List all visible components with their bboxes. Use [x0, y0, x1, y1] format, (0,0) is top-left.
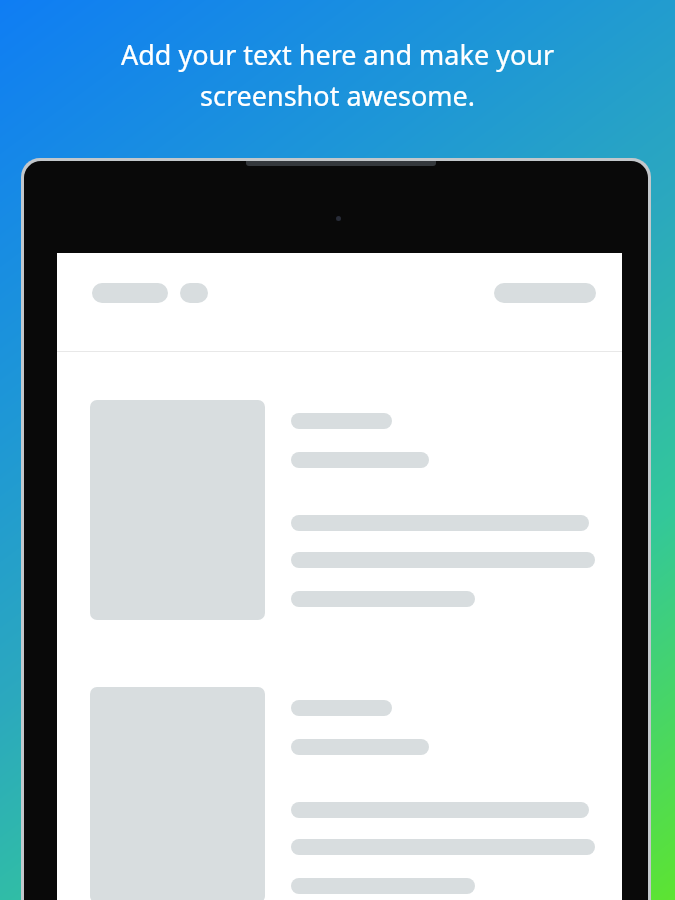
staticText: Add your text here and make your screens…: [0, 36, 675, 114]
button[interactable]: Action: [494, 283, 596, 303]
button[interactable]: Menu: [180, 283, 208, 303]
button[interactable]: Title: [92, 283, 168, 303]
